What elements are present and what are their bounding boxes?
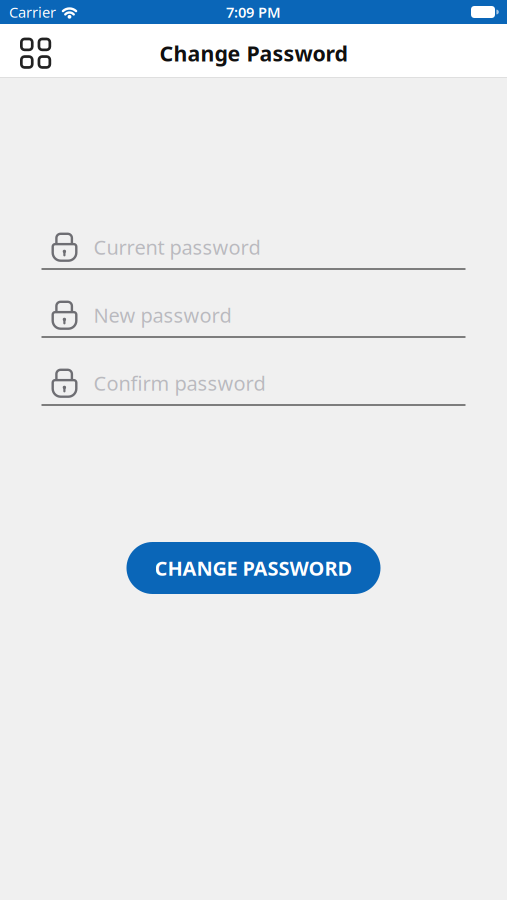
button[interactable]: [20, 35, 51, 67]
button[interactable]: CHANGE PASSWORD: [126, 542, 380, 594]
staticText: 7:09 PM: [226, 2, 281, 22]
button[interactable]: New password: [41, 300, 465, 338]
button[interactable]: Current password: [41, 232, 465, 270]
button[interactable]: Confirm password: [41, 368, 465, 406]
staticText: Carrier: [9, 2, 56, 22]
staticText: Change Password: [159, 39, 347, 67]
staticText: Confirm password: [93, 370, 265, 396]
staticText: CHANGE PASSWORD: [154, 555, 352, 581]
staticText: New password: [93, 302, 231, 328]
staticText: Current password: [93, 234, 260, 260]
